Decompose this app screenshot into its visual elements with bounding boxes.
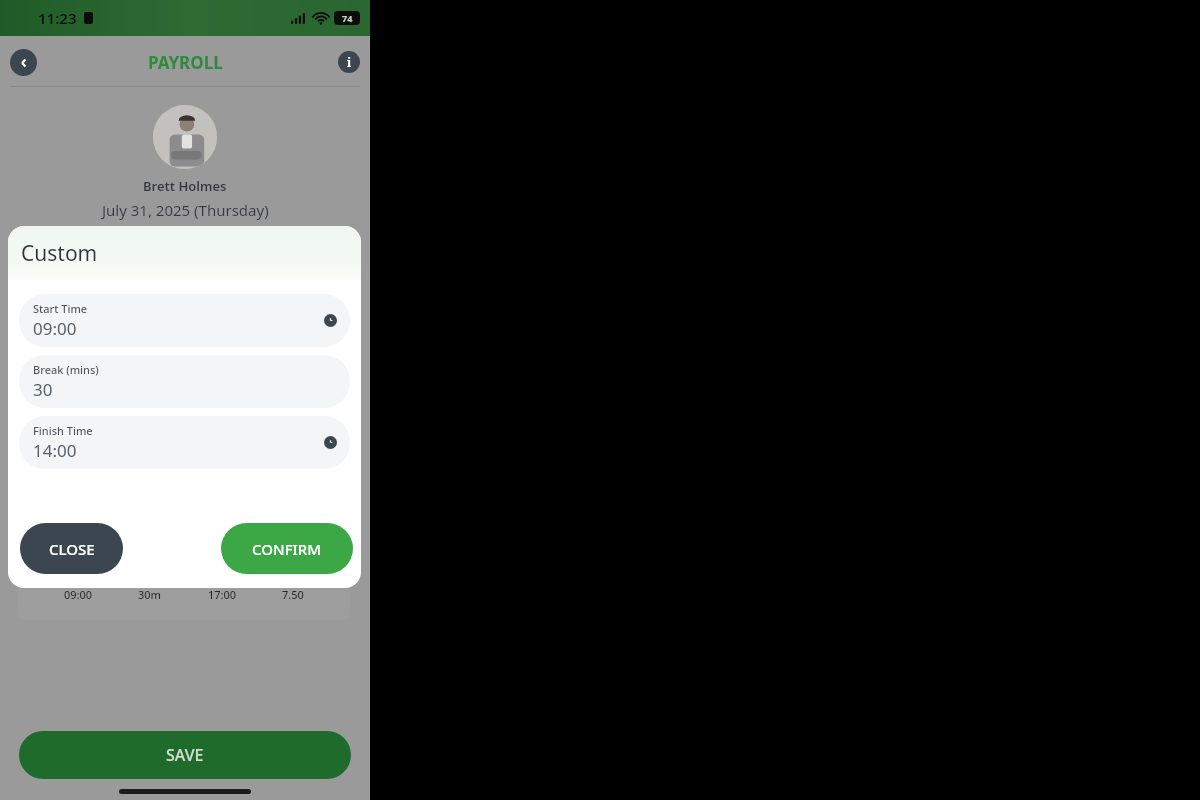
staticText: 30m — [138, 587, 162, 602]
staticText: 74 — [342, 12, 353, 24]
staticText: PAYROLL — [148, 51, 223, 74]
other: Pick time — [324, 436, 337, 449]
button[interactable]: Finish Time — [19, 416, 350, 469]
staticText: Brett Holmes — [143, 177, 227, 195]
staticText: 09:00 — [33, 317, 77, 340]
staticText: i — [347, 54, 352, 70]
staticText: 09:00 — [64, 587, 93, 602]
staticText: SAVE — [166, 744, 204, 766]
staticText: Break (mins) — [33, 362, 99, 377]
staticText: CLOSE — [49, 539, 95, 559]
button[interactable]: Info — [338, 51, 360, 73]
staticText: Finish Time — [33, 423, 93, 438]
staticText: CONFIRM — [252, 539, 322, 559]
button[interactable]: SAVE — [19, 731, 351, 779]
button[interactable]: CLOSE — [20, 523, 123, 574]
button[interactable]: Back — [10, 49, 37, 76]
button[interactable]: Start Time — [19, 294, 350, 347]
staticText: July 31, 2025 (Thursday) — [102, 200, 269, 220]
staticText: 7.50 — [282, 587, 304, 602]
button[interactable]: CONFIRM — [221, 523, 353, 574]
staticText: Start Time — [33, 301, 88, 316]
staticText: 17:00 — [208, 587, 237, 602]
staticText: Custom — [21, 239, 98, 268]
other: Pick time — [324, 314, 337, 327]
staticText: 30 — [33, 378, 53, 401]
button[interactable]: Break (mins) — [19, 355, 350, 408]
staticText: 11:23 — [38, 8, 77, 28]
staticText: 14:00 — [33, 439, 77, 462]
